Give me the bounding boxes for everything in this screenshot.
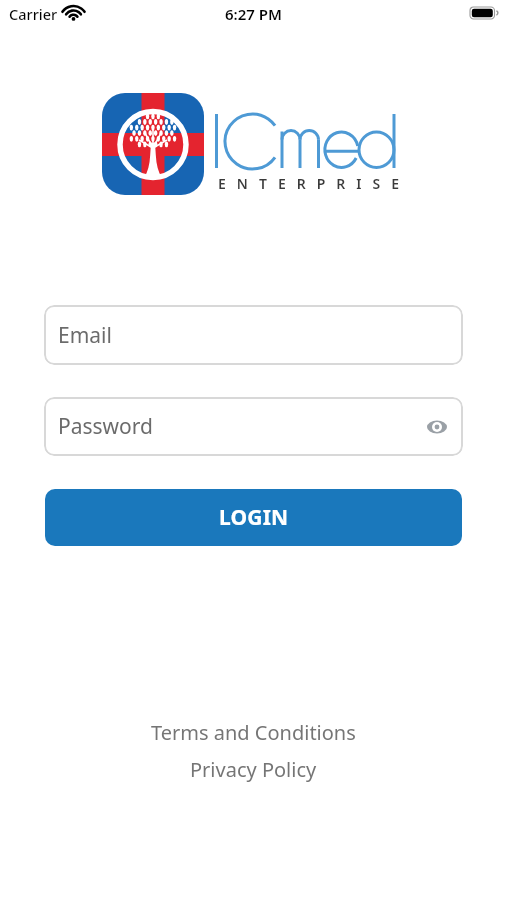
button[interactable] [425,415,449,439]
staticText: Email [58,321,112,350]
button[interactable]: Email [44,305,463,365]
button[interactable]: Terms and Conditions [151,719,356,746]
staticText: LOGIN [219,503,289,532]
staticText: ENTERPRISE [218,174,410,193]
staticText: 6:27 PM [225,4,282,24]
staticText: Carrier [9,4,58,24]
button[interactable]: Privacy Policy [190,756,317,783]
staticText: Password [58,412,153,441]
button[interactable]: LOGIN [45,489,462,546]
button[interactable]: Password [44,397,463,456]
